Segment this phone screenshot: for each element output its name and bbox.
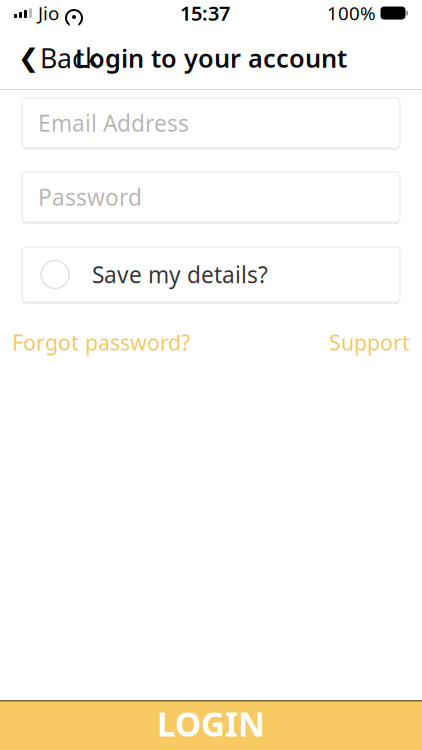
button[interactable]: Save my details? bbox=[22, 247, 400, 302]
staticText: 100% bbox=[327, 1, 376, 25]
staticText: Back bbox=[40, 40, 99, 76]
staticText: Forgot password? bbox=[12, 328, 190, 356]
staticText: Password bbox=[38, 182, 142, 212]
button[interactable]: Forgot password? bbox=[12, 324, 190, 360]
staticText: Email Address bbox=[38, 108, 189, 138]
staticText: Support bbox=[329, 328, 410, 356]
staticText: Login to your account bbox=[75, 41, 347, 75]
button[interactable]: LOGIN bbox=[0, 700, 422, 750]
button[interactable]: ❮ bbox=[14, 32, 103, 84]
staticText: LOGIN bbox=[157, 701, 265, 746]
staticText: Save my details? bbox=[92, 259, 268, 289]
staticText: ❮ bbox=[18, 44, 39, 72]
staticText: 15:37 bbox=[180, 0, 230, 26]
button[interactable]: Support bbox=[329, 324, 410, 360]
staticText: Jio bbox=[38, 1, 59, 25]
